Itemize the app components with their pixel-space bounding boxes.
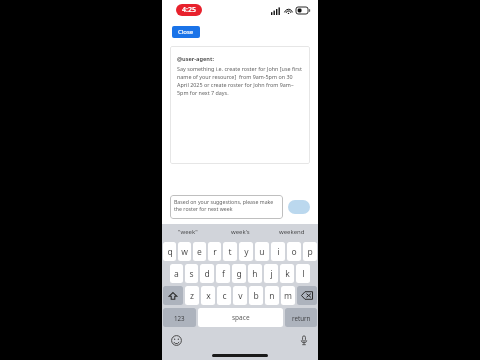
staticText: y: [244, 246, 249, 258]
staticText: a: [174, 268, 179, 280]
button[interactable]: Close: [172, 26, 200, 38]
button[interactable]: v: [233, 286, 247, 305]
button[interactable]: l: [296, 264, 310, 283]
staticText: p: [307, 246, 313, 258]
button[interactable]: Backspace: [297, 286, 317, 305]
staticText: z: [190, 290, 194, 302]
staticText: Based on your suggestions, please make t…: [174, 198, 279, 212]
staticText: i: [277, 246, 280, 258]
button[interactable]: Dictation: [297, 333, 311, 347]
button[interactable]: h: [248, 264, 262, 283]
button[interactable]: Emoji: [169, 333, 183, 347]
button[interactable]: 123: [163, 308, 196, 327]
staticText: o: [291, 246, 297, 258]
button[interactable]: k: [280, 264, 294, 283]
button[interactable]: j: [264, 264, 278, 283]
staticText: m: [284, 290, 292, 302]
staticText: @user-agent:: [177, 55, 214, 63]
staticText: return: [292, 314, 311, 322]
button[interactable]: x: [201, 286, 215, 305]
staticText: b: [253, 290, 259, 302]
staticText: v: [238, 290, 243, 302]
button[interactable]: d: [200, 264, 214, 283]
button[interactable]: w: [178, 242, 191, 261]
staticText: Say something i.e. create roster for Joh…: [177, 65, 303, 97]
staticText: f: [222, 268, 225, 280]
button[interactable]: weekend: [266, 224, 318, 240]
button[interactable]: Shift: [163, 286, 183, 305]
button[interactable]: u: [255, 242, 269, 261]
button[interactable]: y: [239, 242, 253, 261]
button[interactable]: "week": [162, 224, 214, 240]
staticText: Close: [178, 28, 194, 36]
button[interactable]: c: [217, 286, 231, 305]
button[interactable]: t: [223, 242, 237, 261]
staticText: t: [228, 246, 232, 258]
button[interactable]: o: [287, 242, 301, 261]
staticText: weekend: [279, 228, 305, 236]
staticText: q: [167, 246, 173, 258]
button[interactable]: z: [185, 286, 199, 305]
button[interactable]: Based on your suggestions, please make t…: [170, 195, 283, 219]
staticText: x: [206, 290, 211, 302]
staticText: h: [252, 268, 258, 280]
button[interactable]: p: [303, 242, 317, 261]
staticText: u: [259, 246, 265, 258]
staticText: s: [189, 268, 194, 280]
button[interactable]: e: [193, 242, 206, 261]
staticText: c: [222, 290, 227, 302]
button[interactable]: m: [281, 286, 295, 305]
button[interactable]: f: [216, 264, 230, 283]
staticText: w: [181, 246, 188, 258]
button[interactable]: q: [163, 242, 176, 261]
staticText: e: [197, 246, 202, 258]
staticText: 4:25: [182, 5, 196, 15]
button[interactable]: b: [249, 286, 263, 305]
staticText: g: [236, 268, 242, 280]
button[interactable]: a: [170, 264, 183, 283]
staticText: n: [269, 290, 275, 302]
button[interactable]: space: [198, 308, 283, 327]
button[interactable]: n: [265, 286, 279, 305]
button[interactable]: return: [285, 308, 317, 327]
button[interactable]: Send: [288, 200, 310, 214]
button[interactable]: week's: [214, 224, 266, 240]
button[interactable]: s: [185, 264, 198, 283]
staticText: "week": [178, 228, 198, 236]
staticText: r: [213, 246, 217, 258]
button[interactable]: r: [208, 242, 221, 261]
button[interactable]: g: [232, 264, 246, 283]
staticText: week's: [231, 228, 250, 236]
staticText: k: [285, 268, 290, 280]
button[interactable]: i: [271, 242, 285, 261]
staticText: l: [302, 268, 305, 280]
staticText: 123: [174, 314, 185, 322]
staticText: j: [270, 268, 273, 280]
staticText: d: [204, 268, 210, 280]
staticText: space: [232, 313, 250, 322]
